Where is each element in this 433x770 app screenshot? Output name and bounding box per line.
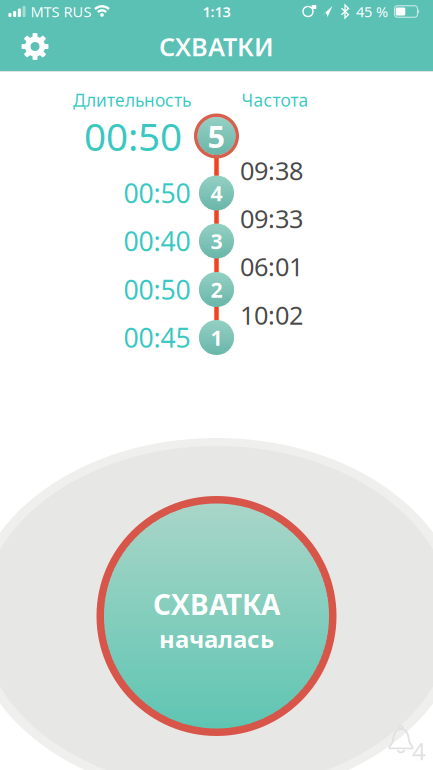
staticText: 09:38 (240, 154, 303, 187)
staticText: Частота (241, 88, 308, 111)
staticText: 06:01 (240, 250, 303, 283)
staticText: 00:50 (123, 175, 190, 211)
staticText: 1 (210, 323, 222, 352)
staticText: 3 (210, 227, 222, 255)
staticText: 00:50 (123, 272, 190, 307)
button[interactable]: СХВАТКА (96, 496, 336, 736)
staticText: 09:33 (240, 202, 303, 235)
staticText: 00:40 (123, 223, 190, 259)
staticText: 4 (412, 735, 426, 767)
button[interactable]: Reminders (387, 724, 427, 762)
staticText: 1:13 (202, 2, 230, 21)
staticText: Длительность (73, 88, 191, 111)
staticText: СХВАТКА (153, 585, 280, 623)
staticText: 2 (210, 275, 222, 304)
staticText: 5 (207, 116, 225, 156)
staticText: 4 (210, 179, 222, 207)
staticText: началась (159, 623, 274, 655)
staticText: MTS RUS (30, 2, 91, 21)
staticText: 45 % (356, 2, 388, 21)
staticText: 00:50 (84, 110, 182, 162)
button[interactable]: Settings (13, 24, 57, 68)
staticText: СХВАТКИ (159, 30, 274, 63)
staticText: 00:45 (123, 320, 190, 355)
staticText: 10:02 (240, 298, 303, 332)
